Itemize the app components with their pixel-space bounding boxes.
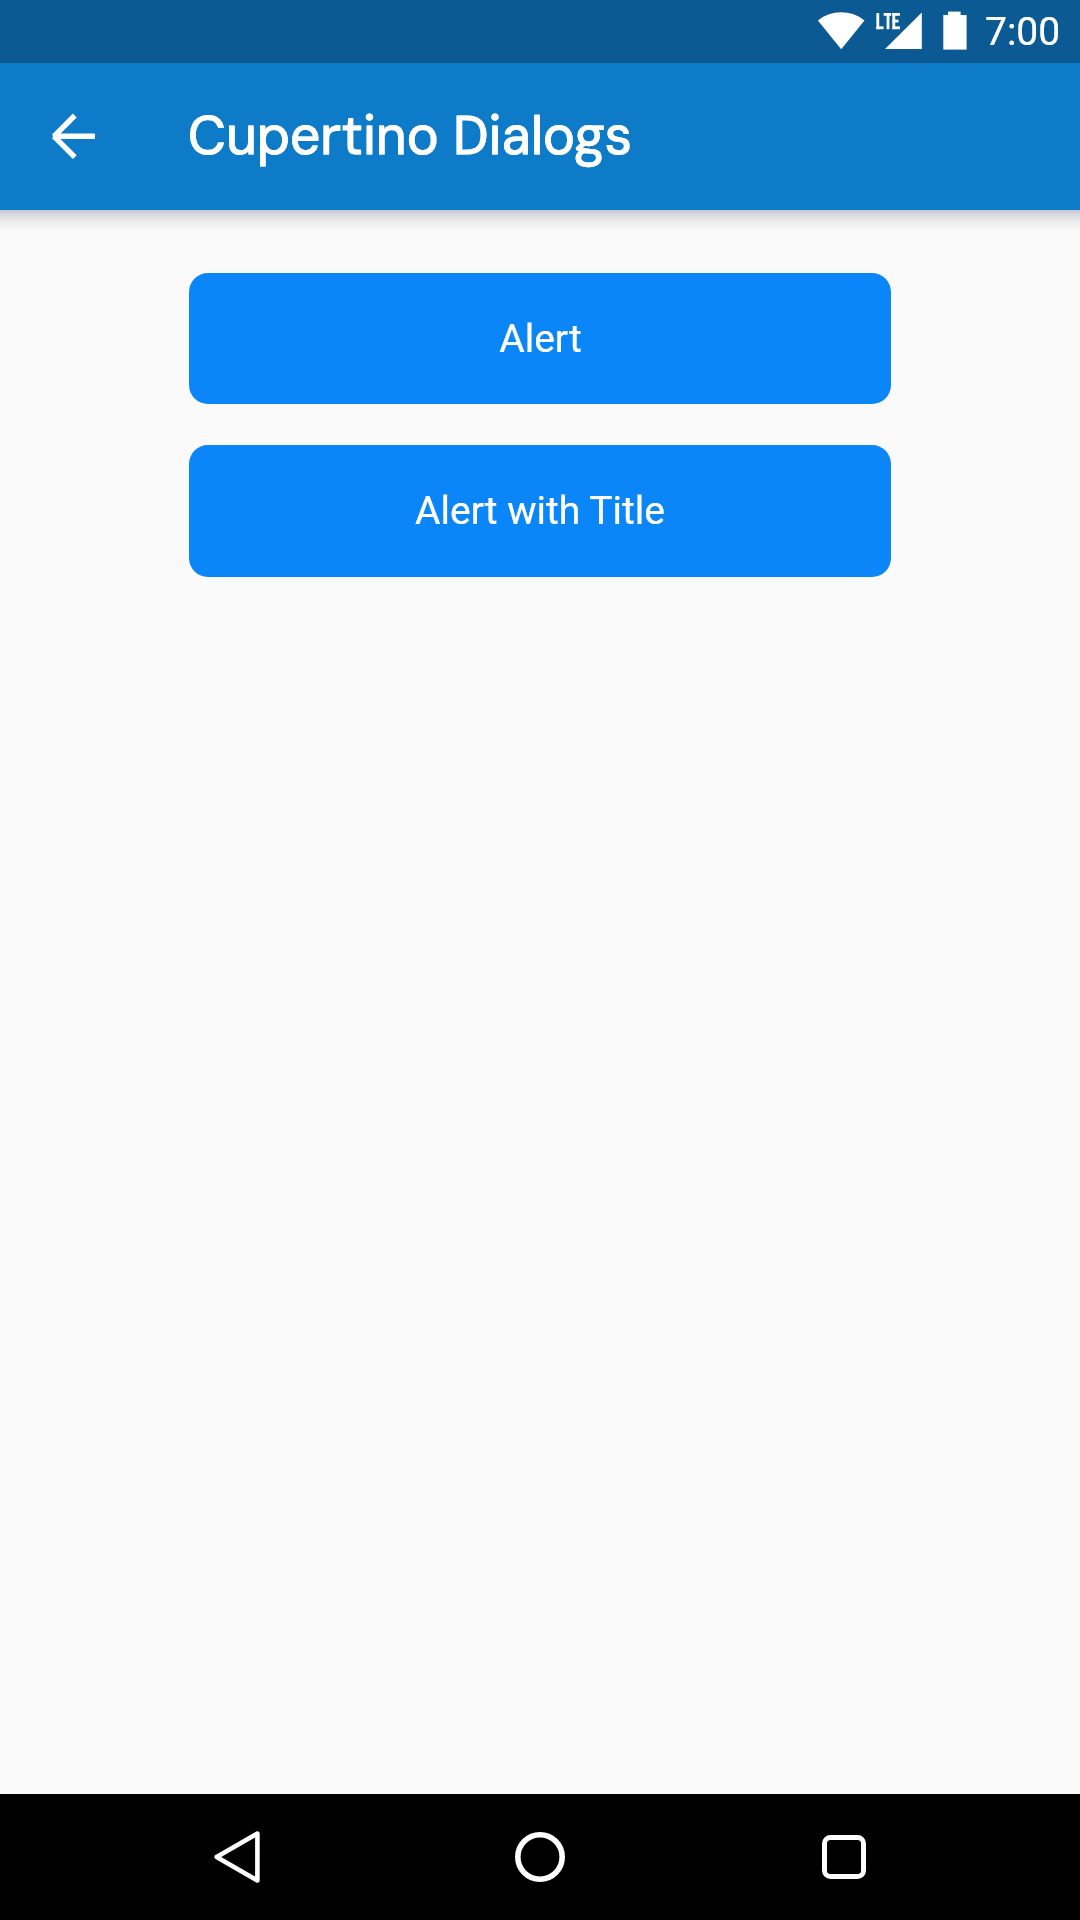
staticText: Alert: [499, 316, 582, 362]
button[interactable]: Alert with Title: [189, 445, 891, 577]
button[interactable]: Back: [31, 94, 115, 178]
button[interactable]: Recent apps: [784, 1797, 904, 1917]
button[interactable]: Alert: [189, 273, 891, 404]
staticText: Cupertino Dialogs: [188, 101, 632, 171]
button[interactable]: Home: [480, 1797, 600, 1917]
staticText: Cupertino Dialogs: [188, 101, 632, 171]
staticText: 7:00: [985, 9, 1061, 55]
button[interactable]: Back: [177, 1797, 297, 1917]
staticText: Alert with Title: [415, 488, 665, 534]
